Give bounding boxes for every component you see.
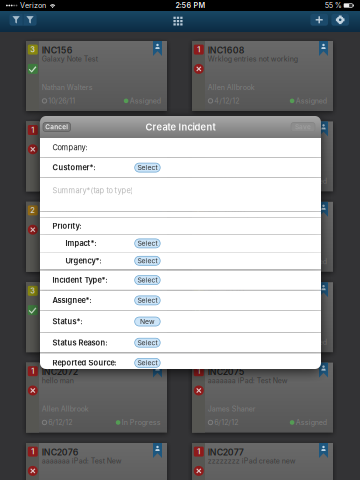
- staticText: INC2061: [208, 125, 244, 136]
- staticText: Test incident: [42, 296, 84, 304]
- staticText: 6/05/12: [48, 338, 73, 346]
- staticText: Status*:: [52, 317, 82, 326]
- button[interactable]: Cancel: [43, 122, 70, 131]
- staticText: 3: [30, 286, 35, 295]
- button[interactable]: 1: [192, 121, 333, 191]
- staticText: hello man: [42, 376, 74, 385]
- staticText: Assigned: [296, 338, 327, 346]
- staticText: iPad test incident two: [208, 135, 279, 144]
- staticText: Select: [137, 359, 157, 367]
- staticText: 4/12/12: [214, 97, 239, 105]
- staticText: 2: [196, 206, 201, 215]
- staticText: In Progress: [122, 418, 161, 427]
- button[interactable]: 3: [26, 41, 167, 111]
- button[interactable]: Filter: [9, 14, 37, 26]
- button[interactable]: Settings: [331, 14, 349, 26]
- button[interactable]: Select: [135, 296, 160, 305]
- staticText: Allen Allbrook: [42, 163, 89, 172]
- button[interactable]: 1: [26, 443, 167, 480]
- staticText: 1: [197, 126, 200, 134]
- staticText: James Shaner: [208, 405, 256, 413]
- staticText: 1: [31, 367, 34, 376]
- staticText: Assigned: [130, 338, 161, 346]
- staticText: Urgency*:: [65, 256, 101, 265]
- button[interactable]: Select: [135, 239, 160, 248]
- staticText: INC2066: [208, 206, 246, 216]
- staticText: Reported Source:: [52, 358, 116, 367]
- button[interactable]: 2: [192, 202, 333, 272]
- staticText: Select: [137, 276, 157, 284]
- staticText: iPad test incident: [42, 135, 99, 144]
- staticText: Assigned: [296, 97, 327, 105]
- staticText: Nathan Walters: [208, 324, 259, 333]
- staticText: Impact*:: [65, 239, 96, 248]
- staticText: Assigned: [130, 97, 161, 105]
- staticText: printer offline: [42, 215, 87, 224]
- staticText: 5/02/12: [214, 177, 239, 185]
- staticText: 6/12/12: [214, 418, 238, 427]
- button[interactable]: 3: [26, 282, 167, 352]
- staticText: Assignee*:: [52, 296, 91, 305]
- staticText: 55 %: [325, 1, 342, 10]
- staticText: Nathan Walters: [42, 83, 93, 92]
- staticText: New: [140, 317, 155, 326]
- staticText: 10/26/11: [48, 97, 75, 105]
- staticText: zzzzzzzz iPad create new: [208, 457, 296, 465]
- staticText: INC2069: [42, 286, 80, 297]
- staticText: Priority:: [52, 221, 81, 230]
- staticText: INC1608: [208, 45, 245, 56]
- button[interactable]: Select: [135, 276, 160, 285]
- staticText: 2: [30, 206, 35, 215]
- staticText: Assigned: [130, 257, 161, 266]
- staticText: Allen Allbrook: [42, 405, 89, 413]
- staticText: Wrklog entries not working: [208, 55, 298, 63]
- staticText: Select: [137, 257, 157, 265]
- staticText: INC156: [42, 45, 73, 56]
- staticText: Incident Type*:: [52, 276, 107, 285]
- staticText: 6/01/12: [48, 257, 72, 266]
- staticText: 6/12/12: [48, 418, 72, 427]
- button[interactable]: Select: [135, 358, 160, 367]
- staticText: Allen Allbrook: [208, 83, 255, 92]
- staticText: Galaxy Note Test: [42, 55, 98, 63]
- button[interactable]: 1: [26, 363, 167, 433]
- staticText: Assigned: [296, 177, 327, 185]
- button[interactable]: 1: [192, 443, 333, 480]
- staticText: Assigned: [296, 257, 327, 266]
- staticText: INC2065: [42, 206, 80, 216]
- button[interactable]: Save: [291, 122, 315, 131]
- staticText: cannot reach share: [208, 215, 272, 224]
- staticText: INC2070: [208, 286, 245, 297]
- staticText: 1: [197, 447, 200, 456]
- staticText: Assigned: [130, 177, 161, 185]
- staticText: Select: [137, 339, 157, 347]
- staticText: Verizon: [20, 1, 46, 10]
- button[interactable]: New: [135, 317, 160, 326]
- staticText: Create Incident: [145, 121, 215, 133]
- button[interactable]: 1: [192, 41, 333, 111]
- staticText: 3: [196, 286, 201, 295]
- button[interactable]: 2: [26, 202, 167, 272]
- button[interactable]: Grid view: [172, 16, 184, 27]
- staticText: Summary*(tap to type): [52, 186, 133, 195]
- staticText: Customer*:: [52, 163, 95, 172]
- button[interactable]: Select: [135, 338, 160, 347]
- button[interactable]: 1: [26, 121, 167, 191]
- staticText: Allen Allbrook: [42, 244, 89, 252]
- button[interactable]: Select: [135, 256, 160, 265]
- staticText: aaaaaaa iPad: Test New: [208, 376, 288, 385]
- staticText: 1: [197, 367, 200, 376]
- staticText: Nathan Walters: [42, 324, 93, 333]
- button[interactable]: New incident: [310, 14, 328, 26]
- staticText: Company:: [52, 143, 87, 152]
- staticText: 1: [31, 126, 34, 134]
- button[interactable]: 3: [192, 282, 333, 352]
- staticText: Select: [137, 296, 157, 304]
- button[interactable]: 1: [192, 363, 333, 433]
- staticText: 5/02/12: [48, 177, 73, 185]
- button[interactable]: Select: [135, 163, 160, 172]
